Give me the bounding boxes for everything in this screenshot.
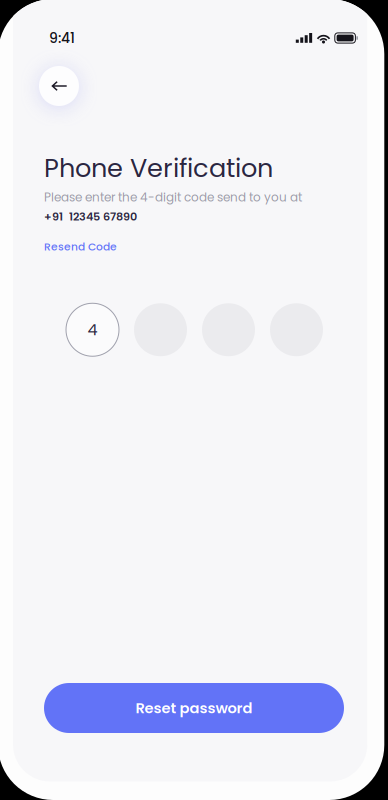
staticText: Phone Verification	[44, 150, 273, 186]
staticText: +91 12345 67890	[44, 209, 137, 224]
button[interactable]: Reset password	[44, 683, 344, 733]
staticText: 4	[87, 319, 97, 341]
staticText: Resend Code	[44, 239, 117, 254]
staticText: Please enter the 4-digit code send to yo…	[44, 189, 302, 206]
button[interactable]: Back	[39, 66, 79, 106]
button[interactable]: Resend Code	[44, 239, 117, 254]
staticText: 9:41	[49, 28, 75, 48]
staticText: Reset password	[135, 698, 252, 718]
